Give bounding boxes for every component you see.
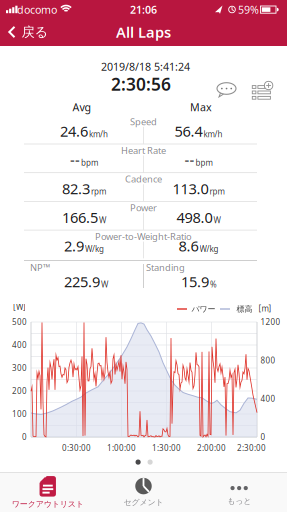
- staticText: Speed: [130, 115, 157, 128]
- button[interactable]: ワークアウトリスト: [0, 473, 95, 511]
- staticText: %: [210, 279, 217, 290]
- staticText: 0:30:00: [62, 443, 91, 453]
- staticText: セグメント: [123, 497, 163, 507]
- staticText: W/kg: [85, 243, 104, 254]
- staticText: Standing: [146, 261, 185, 274]
- staticText: 2:00:00: [197, 443, 226, 453]
- staticText: 2:30:56: [111, 72, 171, 95]
- staticText: Avg: [72, 100, 91, 114]
- staticText: rpm: [209, 186, 224, 197]
- staticText: 1:30:00: [152, 443, 181, 453]
- staticText: rpm: [91, 186, 106, 197]
- staticText: 1:00:00: [107, 443, 136, 453]
- staticText: [W]: [13, 302, 26, 312]
- staticText: 800: [260, 355, 275, 366]
- staticText: 400: [12, 340, 27, 350]
- staticText: 200: [12, 386, 27, 396]
- staticText: 24.6: [60, 121, 88, 141]
- staticText: 15.9: [181, 272, 209, 291]
- staticText: 1200: [260, 317, 280, 327]
- staticText: 8.6: [178, 236, 198, 256]
- staticText: --: [70, 150, 80, 170]
- staticText: bpm: [81, 157, 98, 168]
- staticText: Power-to-Weight-Ratio: [95, 230, 192, 243]
- staticText: 2.9: [64, 236, 84, 256]
- staticText: 82.3: [62, 179, 90, 198]
- staticText: All Laps: [116, 22, 171, 42]
- staticText: 2:30:00: [237, 443, 266, 453]
- staticText: W: [101, 279, 108, 290]
- staticText: 59%: [238, 2, 259, 17]
- staticText: [m]: [258, 303, 271, 314]
- staticText: km/h: [203, 129, 222, 139]
- staticText: 0: [22, 432, 27, 442]
- staticText: W: [213, 215, 220, 225]
- button[interactable]: Back: [2, 18, 54, 46]
- staticText: 166.5: [62, 207, 98, 227]
- staticText: NP™: [30, 261, 50, 274]
- staticText: 500: [12, 317, 27, 327]
- staticText: 0: [260, 432, 265, 442]
- staticText: 100: [12, 409, 27, 419]
- staticText: km/h: [89, 129, 108, 139]
- staticText: 標高: [236, 304, 252, 314]
- staticText: --: [184, 150, 194, 170]
- staticText: W/kg: [199, 243, 218, 254]
- staticText: 21:06: [130, 2, 157, 17]
- staticText: ワークアウトリスト: [12, 499, 84, 509]
- staticText: Max: [190, 100, 212, 114]
- button[interactable]: Comment: [216, 81, 237, 98]
- button[interactable]: セグメント: [96, 473, 191, 511]
- staticText: 2019/8/18 5:41:24: [101, 59, 190, 74]
- staticText: Heart Rate: [121, 144, 166, 156]
- button[interactable]: Edit laps: [252, 81, 273, 101]
- staticText: 56.4: [174, 121, 202, 141]
- staticText: W: [99, 215, 106, 225]
- staticText: bpm: [195, 157, 212, 168]
- staticText: もっと: [227, 496, 251, 506]
- staticText: 113.0: [172, 179, 208, 198]
- staticText: 300: [12, 363, 27, 373]
- staticText: 225.9: [64, 272, 100, 291]
- staticText: docomo: [17, 2, 57, 17]
- staticText: 400: [260, 393, 275, 404]
- staticText: 戻る: [21, 24, 48, 40]
- staticText: Cadence: [125, 173, 162, 185]
- staticText: パワー: [191, 304, 215, 314]
- staticText: 498.0: [176, 207, 212, 227]
- staticText: Power: [130, 201, 157, 214]
- button[interactable]: もっと: [192, 473, 287, 511]
